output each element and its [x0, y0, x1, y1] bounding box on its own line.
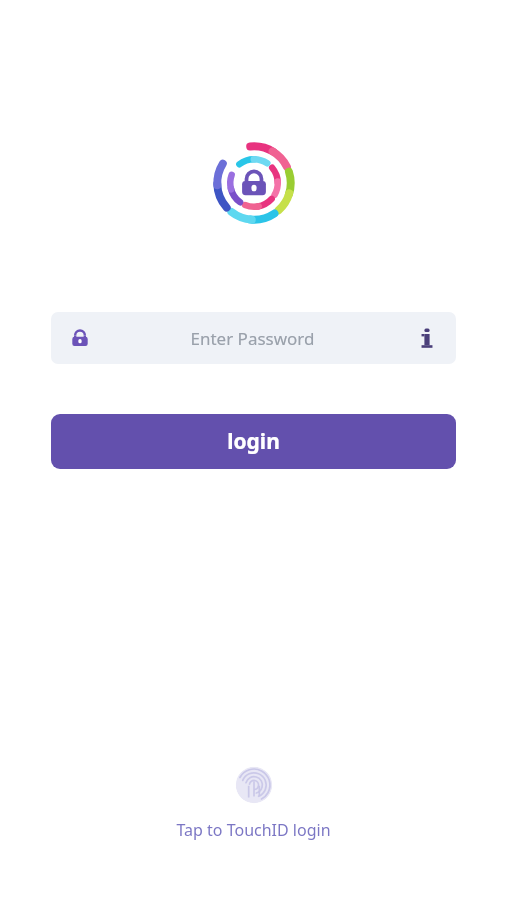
staticText: Enter Password [190, 327, 315, 350]
button[interactable]: TouchID fingerprint [0, 762, 507, 841]
button[interactable]: Password info [410, 321, 444, 355]
other: TouchID fingerprint [235, 766, 273, 804]
button[interactable]: Password [51, 312, 456, 364]
button[interactable]: login [51, 414, 456, 469]
staticText: Tap to TouchID login [176, 819, 331, 841]
staticText: login [227, 427, 280, 456]
other: Password [65, 323, 95, 353]
other: App logo [182, 111, 326, 255]
